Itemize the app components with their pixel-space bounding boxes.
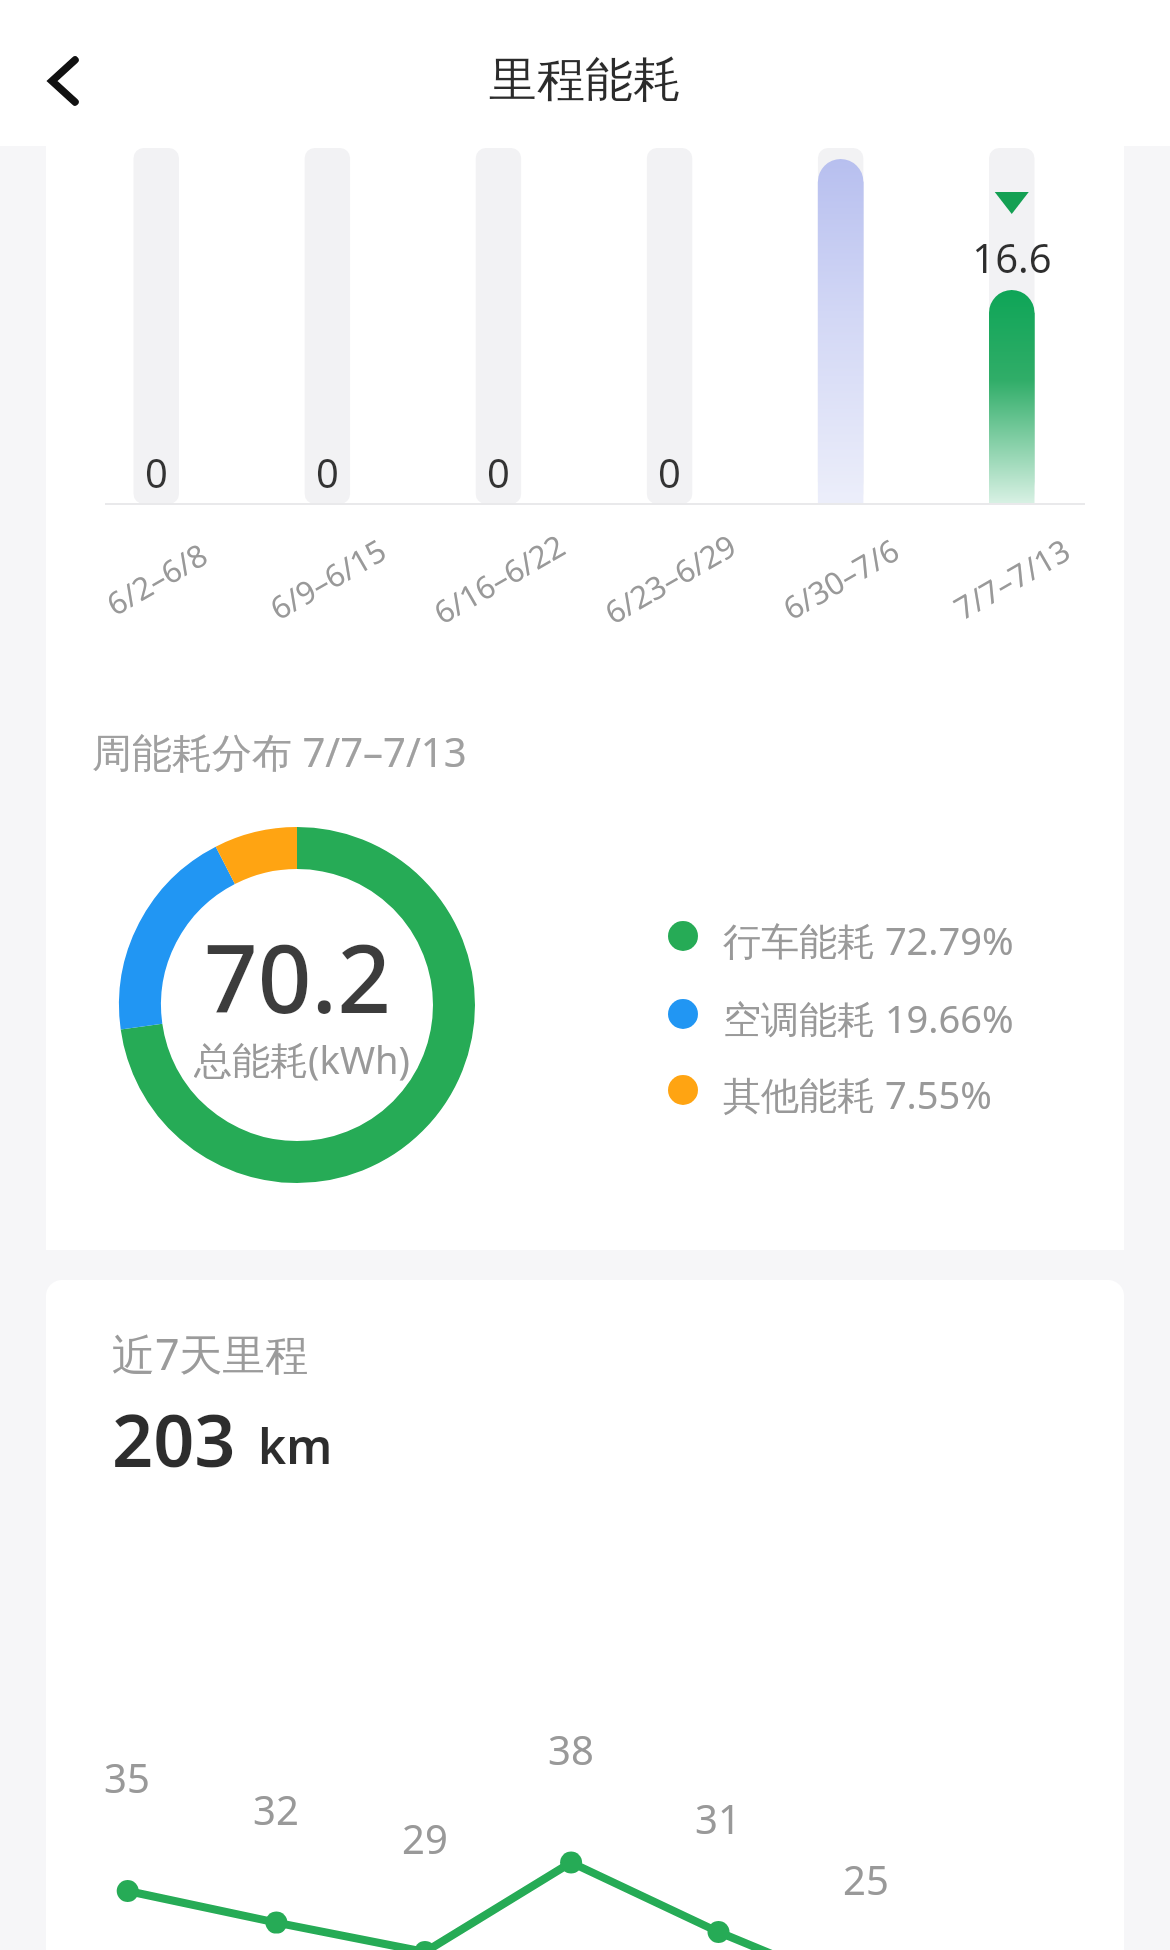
staticText: 31 xyxy=(695,1791,741,1837)
staticText: 行车能耗 72.79% xyxy=(723,914,1014,966)
staticText: 里程能耗 xyxy=(489,50,681,110)
staticText: 70.2 xyxy=(204,913,391,1023)
staticText: 25 xyxy=(843,1852,889,1898)
staticText: 38 xyxy=(548,1722,594,1768)
staticText: 其他能耗 7.55% xyxy=(723,1068,992,1120)
button[interactable] xyxy=(808,146,874,506)
staticText: km xyxy=(258,1413,333,1478)
staticText: 周能耗分布 7/7–7/13 xyxy=(92,724,467,779)
button[interactable] xyxy=(295,146,361,506)
staticText: 16.6 xyxy=(972,230,1052,276)
staticText: 32 xyxy=(253,1782,299,1828)
staticText: 7/7–7/13 xyxy=(946,529,1076,627)
button[interactable] xyxy=(124,146,190,506)
button[interactable] xyxy=(30,40,96,106)
staticText: 总能耗(kWh) xyxy=(194,1033,410,1083)
staticText: 6/23–6/29 xyxy=(597,524,742,631)
staticText: 近7天里程 xyxy=(112,1324,309,1383)
staticText: 0 xyxy=(145,445,168,491)
staticText: 35 xyxy=(104,1750,150,1796)
staticText: 0 xyxy=(316,445,339,491)
staticText: 6/2–6/8 xyxy=(98,533,214,623)
button[interactable] xyxy=(466,146,532,506)
staticText: 6/16–6/22 xyxy=(426,524,571,631)
button[interactable] xyxy=(979,146,1045,506)
button[interactable] xyxy=(637,146,703,506)
staticText: 203 xyxy=(112,1390,236,1488)
staticText: 6/9–6/15 xyxy=(262,529,392,627)
staticText: 29 xyxy=(402,1811,448,1857)
staticText: 0 xyxy=(487,445,510,491)
staticText: 0 xyxy=(658,445,681,491)
staticText: 6/30–7/6 xyxy=(775,529,905,627)
staticText: 空调能耗 19.66% xyxy=(723,992,1014,1044)
